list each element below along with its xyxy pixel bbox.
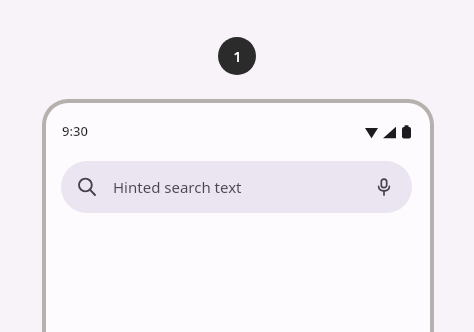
staticText: 1 <box>233 46 242 66</box>
button[interactable]: 1 <box>218 37 256 75</box>
other: Search <box>75 175 99 199</box>
button[interactable]: Search <box>61 161 412 213</box>
staticText: Hinted search text <box>113 177 372 197</box>
button[interactable]: Voice search <box>372 175 396 199</box>
staticText: 9:30 <box>62 122 88 140</box>
